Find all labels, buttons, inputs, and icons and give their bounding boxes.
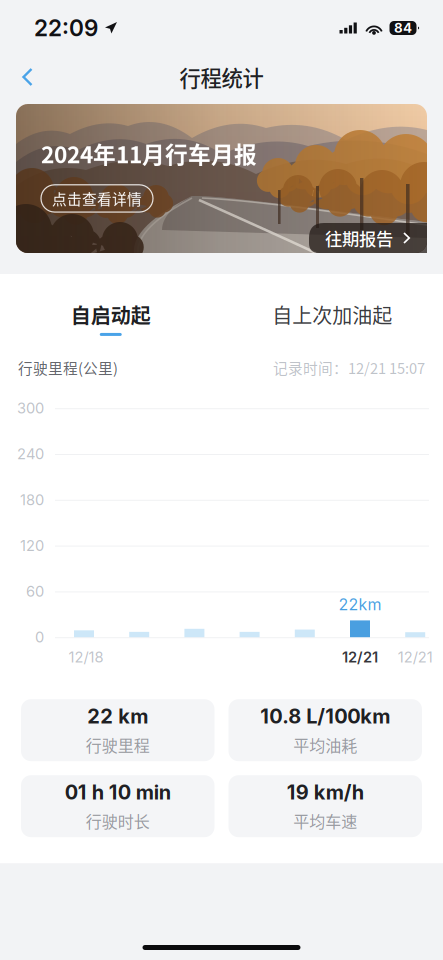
staticText: 12/21: [342, 648, 378, 666]
staticText: 19 km/h: [287, 780, 364, 804]
staticText: 180: [20, 491, 44, 509]
button[interactable]: 自上次加油起: [221, 281, 443, 353]
staticText: 行程统计: [179, 62, 263, 92]
staticText: 记录时间：12/21 15:07: [273, 357, 425, 378]
staticText: 240: [17, 445, 44, 463]
staticText: 2024年11月行车月报: [41, 137, 257, 170]
staticText: 60: [26, 582, 44, 600]
button[interactable]: Back: [0, 59, 49, 95]
button[interactable]: 22 km: [21, 699, 214, 761]
button[interactable]: 往期报告: [309, 223, 427, 253]
staticText: 平均油耗: [293, 733, 357, 756]
staticText: 84: [394, 20, 412, 36]
staticText: 300: [17, 399, 44, 417]
staticText: 22 km: [87, 704, 148, 728]
staticText: 22km: [338, 595, 381, 614]
staticText: 22:09: [34, 14, 98, 42]
staticText: 10.8 L/100km: [260, 704, 390, 728]
staticText: 平均车速: [293, 809, 357, 832]
staticText: 12/21: [398, 648, 433, 666]
staticText: 往期报告: [325, 225, 393, 251]
staticText: 行驶里程(公里): [18, 357, 118, 378]
button[interactable]: 点击查看详情: [41, 185, 153, 212]
staticText: 12/18: [68, 648, 103, 666]
staticText: 行驶里程: [86, 733, 150, 756]
button[interactable]: 自启动起: [0, 281, 221, 353]
staticText: 点击查看详情: [52, 188, 142, 209]
staticText: 120: [20, 537, 44, 554]
button[interactable]: 2024年11月行车月报: [16, 104, 427, 253]
staticText: 自启动起: [71, 300, 151, 329]
staticText: 01 h 10 min: [65, 780, 171, 804]
button[interactable]: 19 km/h: [228, 775, 422, 837]
button[interactable]: 01 h 10 min: [21, 775, 214, 837]
staticText: 自上次加油起: [272, 300, 392, 329]
button[interactable]: 10.8 L/100km: [228, 699, 422, 761]
staticText: 行驶时长: [86, 809, 150, 832]
staticText: 0: [35, 628, 44, 646]
